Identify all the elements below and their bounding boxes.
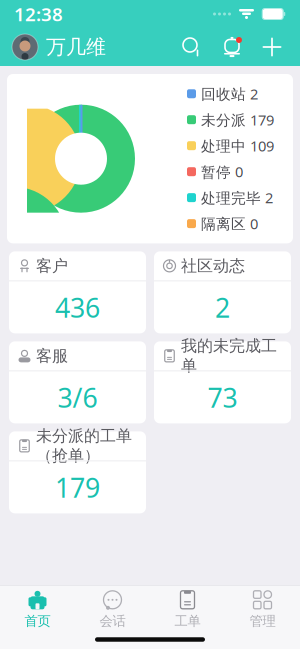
staticText: 首页: [24, 613, 50, 629]
button[interactable]: 会话: [75, 584, 150, 632]
button[interactable]: 工单: [150, 584, 225, 632]
staticText: 处理完毕 2: [201, 188, 273, 207]
button[interactable]: 客服: [9, 341, 146, 423]
staticText: 未分派 179: [201, 110, 274, 129]
staticText: 73: [207, 380, 237, 415]
staticText: 回收站 2: [201, 84, 258, 103]
button[interactable]: 首页: [0, 584, 75, 632]
button[interactable]: 我的未完成工单: [154, 341, 291, 423]
staticText: 客服: [36, 346, 68, 366]
staticText: 工单: [174, 613, 200, 629]
staticText: 436: [55, 290, 100, 325]
button[interactable]: Notifications: [216, 31, 248, 63]
button[interactable]: 未分派的工单（抢单）: [9, 431, 146, 513]
staticText: 会话: [99, 613, 125, 629]
staticText: 万几维: [46, 35, 106, 59]
staticText: 隔离区 0: [201, 214, 258, 233]
staticText: 未分派的工单（抢单）: [36, 426, 132, 465]
button[interactable]: Search: [176, 31, 208, 63]
staticText: 社区动态: [181, 256, 245, 276]
staticText: 179: [55, 470, 100, 505]
staticText: 12:38: [14, 2, 63, 26]
button[interactable]: 社区动态: [154, 251, 291, 333]
button[interactable]: 万几维: [12, 29, 114, 65]
staticText: 客户: [36, 256, 68, 276]
button[interactable]: Add: [256, 31, 288, 63]
staticText: 处理中 109: [201, 136, 274, 155]
staticText: 我的未完成工单: [181, 336, 277, 375]
staticText: 管理: [249, 613, 275, 629]
staticText: 2: [215, 290, 230, 325]
button[interactable]: 客户: [9, 251, 146, 333]
button[interactable]: 管理: [225, 584, 300, 632]
staticText: 3/6: [57, 380, 97, 415]
staticText: 暂停 0: [201, 162, 243, 181]
